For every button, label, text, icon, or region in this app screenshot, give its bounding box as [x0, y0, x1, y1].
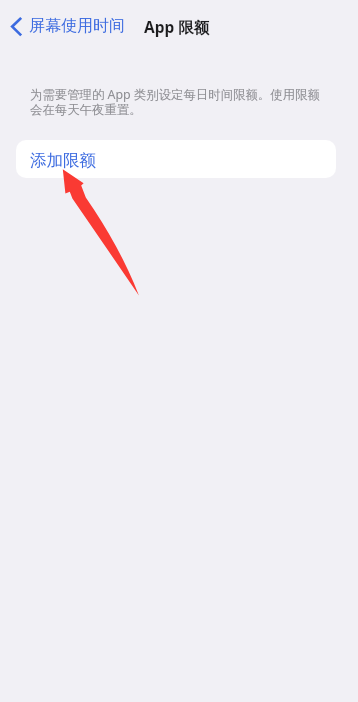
- staticText: 屏幕使用时间: [29, 16, 125, 36]
- button[interactable]: 添加限额: [16, 140, 336, 178]
- button[interactable]: Back to 屏幕使用时间: [5, 0, 125, 52]
- staticText: 添加限额: [30, 150, 96, 171]
- staticText: App 限额: [144, 16, 210, 37]
- staticText: 为需要管理的 App 类别设定每日时间限额。使用限额会在每天午夜重置。: [30, 86, 320, 118]
